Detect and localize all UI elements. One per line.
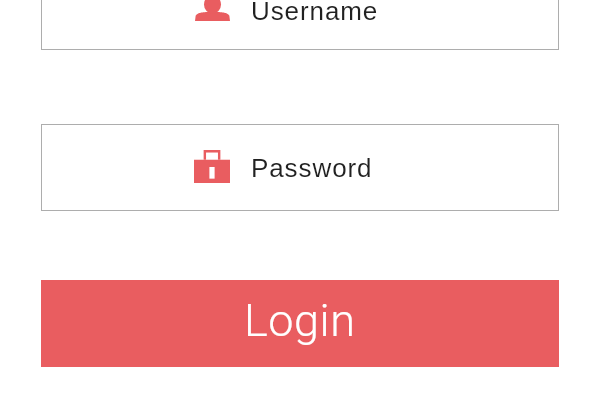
button[interactable]: Username	[41, 0, 559, 50]
button[interactable]: Login	[41, 280, 559, 367]
button[interactable]: Password	[41, 124, 559, 211]
staticText: Login	[244, 294, 356, 347]
other: Password	[194, 150, 230, 183]
staticText: Password	[251, 153, 373, 182]
other: Username	[195, 0, 230, 21]
staticText: Username	[251, 0, 379, 25]
